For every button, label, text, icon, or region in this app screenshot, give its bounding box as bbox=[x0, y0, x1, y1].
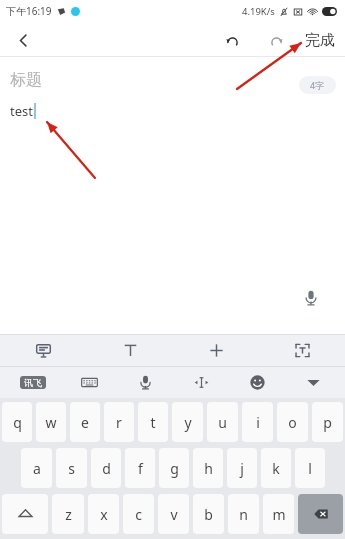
staticText: k bbox=[272, 459, 280, 478]
staticText: 4字 bbox=[310, 79, 325, 91]
staticText: q bbox=[13, 413, 22, 432]
button[interactable]: e bbox=[70, 402, 100, 442]
staticText: c bbox=[135, 505, 142, 524]
staticText: 标题 bbox=[10, 70, 42, 90]
staticText: s bbox=[68, 459, 75, 478]
button[interactable]: Emoji bbox=[229, 366, 285, 398]
button[interactable]: iFlytek input bbox=[4, 366, 61, 398]
button[interactable]: n bbox=[228, 494, 259, 534]
button[interactable]: Back bbox=[6, 23, 40, 57]
staticText: 讯飞 bbox=[24, 377, 42, 388]
staticText: u bbox=[218, 413, 227, 432]
button[interactable]: i bbox=[242, 402, 273, 442]
button[interactable]: Handwriting bbox=[0, 334, 87, 366]
button[interactable]: t bbox=[138, 402, 168, 442]
button[interactable]: z bbox=[52, 494, 84, 534]
button[interactable]: x bbox=[88, 494, 119, 534]
button[interactable]: p bbox=[312, 402, 343, 442]
staticText: e bbox=[81, 413, 89, 432]
staticText: d bbox=[102, 459, 111, 478]
staticText: x bbox=[100, 505, 108, 524]
staticText: j bbox=[240, 459, 244, 478]
staticText: 4.19K/s bbox=[242, 5, 275, 18]
staticText: l bbox=[308, 459, 312, 478]
button[interactable]: 4字 bbox=[299, 76, 336, 94]
button[interactable]: c bbox=[123, 494, 154, 534]
staticText: z bbox=[65, 505, 72, 524]
staticText: t bbox=[150, 413, 156, 432]
button[interactable]: q bbox=[2, 402, 32, 442]
button[interactable]: s bbox=[56, 448, 87, 488]
button[interactable]: o bbox=[277, 402, 308, 442]
button[interactable]: Insert bbox=[173, 334, 259, 366]
button[interactable]: Backspace bbox=[298, 494, 343, 534]
button[interactable]: l bbox=[295, 448, 325, 488]
staticText: w bbox=[45, 413, 57, 432]
button[interactable]: Shift bbox=[2, 494, 48, 534]
button[interactable]: v bbox=[158, 494, 189, 534]
button[interactable]: h bbox=[193, 448, 223, 488]
button[interactable]: f bbox=[125, 448, 155, 488]
staticText: f bbox=[138, 459, 143, 478]
button[interactable]: r bbox=[104, 402, 134, 442]
button[interactable]: y bbox=[172, 402, 203, 442]
staticText: i bbox=[256, 413, 260, 432]
button[interactable]: g bbox=[159, 448, 189, 488]
button[interactable]: Redo bbox=[259, 23, 293, 57]
staticText: g bbox=[170, 459, 179, 478]
staticText: h bbox=[204, 459, 213, 478]
staticText: y bbox=[184, 413, 192, 432]
button[interactable]: Scan text bbox=[259, 334, 345, 366]
staticText: p bbox=[323, 413, 332, 432]
staticText: 完成 bbox=[305, 31, 335, 50]
staticText: r bbox=[116, 413, 122, 432]
button[interactable]: Voice input bbox=[290, 277, 332, 319]
button[interactable]: u bbox=[207, 402, 238, 442]
button[interactable]: w bbox=[36, 402, 66, 442]
button[interactable]: Text style bbox=[87, 334, 173, 366]
staticText: test bbox=[10, 102, 33, 120]
staticText: b bbox=[204, 505, 213, 524]
staticText: 下午16:19 bbox=[6, 4, 52, 18]
button[interactable]: Move cursor bbox=[173, 366, 229, 398]
button[interactable]: Voice bbox=[117, 366, 173, 398]
staticText: a bbox=[33, 459, 41, 478]
button[interactable]: m bbox=[263, 494, 294, 534]
button[interactable]: j bbox=[227, 448, 257, 488]
button[interactable]: Keyboard layout bbox=[61, 366, 117, 398]
button[interactable]: 完成 bbox=[299, 25, 341, 56]
button[interactable]: k bbox=[261, 448, 291, 488]
button[interactable]: b bbox=[193, 494, 224, 534]
staticText: o bbox=[288, 413, 297, 432]
button[interactable]: d bbox=[91, 448, 121, 488]
button[interactable]: a bbox=[21, 448, 52, 488]
staticText: n bbox=[239, 505, 248, 524]
staticText: v bbox=[170, 505, 178, 524]
button[interactable]: Undo bbox=[215, 23, 249, 57]
staticText: m bbox=[272, 505, 286, 524]
button[interactable]: Hide keyboard bbox=[285, 366, 341, 398]
